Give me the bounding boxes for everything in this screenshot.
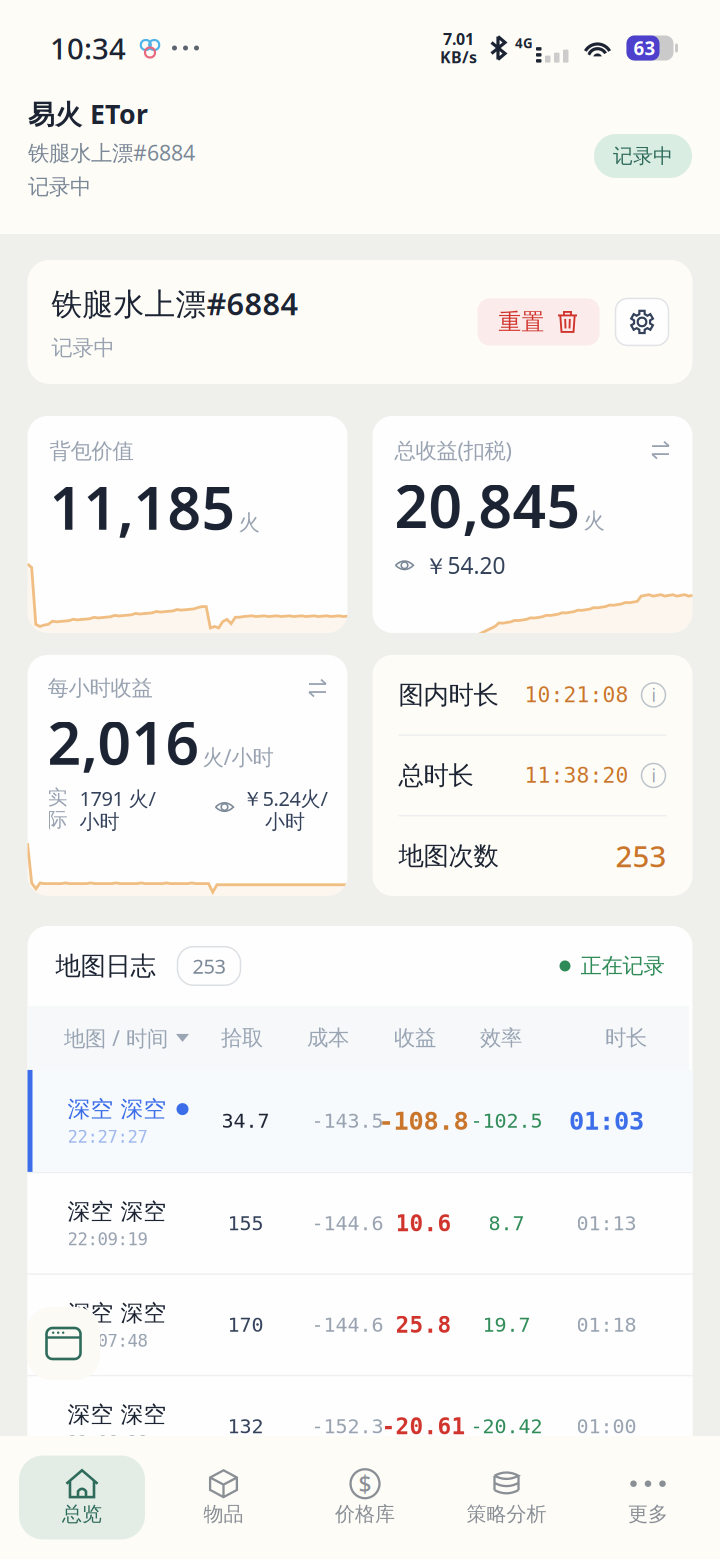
staticText: 10:21:08 xyxy=(524,683,628,707)
staticText: 01:13 xyxy=(576,1212,636,1235)
staticText: 物品 xyxy=(203,1502,243,1526)
staticText: 4G xyxy=(515,34,533,52)
staticText: -102.5 xyxy=(470,1110,542,1132)
staticText: 19.7 xyxy=(482,1314,530,1336)
staticText: 拾取 xyxy=(221,1025,263,1051)
staticText: -144.6 xyxy=(311,1212,383,1235)
staticText: 253 xyxy=(192,953,225,979)
button[interactable]: 重置 xyxy=(477,298,599,345)
button[interactable]: 深空 深空 xyxy=(27,1275,692,1375)
staticText: 效率 xyxy=(480,1025,522,1051)
staticText: 170 xyxy=(227,1314,263,1336)
staticText: ￥5.24火/ xyxy=(242,785,327,812)
staticText: 20,845 xyxy=(394,466,580,544)
staticText: 更多 xyxy=(628,1502,668,1526)
staticText: i xyxy=(651,683,655,706)
staticText: 成本 xyxy=(307,1025,349,1051)
staticText: 34.7 xyxy=(221,1110,269,1132)
staticText: 2,016 xyxy=(47,703,199,781)
staticText: 收益 xyxy=(394,1025,436,1051)
staticText: -144.6 xyxy=(311,1314,383,1336)
button[interactable]: 策略分析 xyxy=(443,1455,569,1539)
staticText: 策略分析 xyxy=(466,1502,546,1526)
staticText: 背包价值 xyxy=(49,438,133,464)
staticText: 深空 深空 xyxy=(67,1198,166,1225)
staticText: $ xyxy=(358,1469,371,1499)
staticText: 63 xyxy=(633,36,655,60)
button[interactable]: 总览 xyxy=(19,1455,145,1539)
staticText: 253 xyxy=(615,836,666,875)
staticText: 地图次数 xyxy=(398,840,498,871)
staticText: 深空 深空 xyxy=(67,1401,166,1428)
staticText: 记录中 xyxy=(51,335,114,361)
staticText: 火 xyxy=(238,510,259,536)
staticText: 实 xyxy=(47,785,67,810)
staticText: 深空 深空 xyxy=(67,1299,166,1327)
button[interactable]: 设置 xyxy=(615,298,668,345)
staticText: 火 xyxy=(583,508,604,534)
staticText: 总时长 xyxy=(398,760,473,791)
staticText: 1791 火/ xyxy=(79,785,155,812)
staticText: 22:06:38 xyxy=(67,1432,147,1452)
staticText: 价格库 xyxy=(335,1502,395,1526)
staticText: 22:07:48 xyxy=(67,1331,147,1351)
staticText: 11,185 xyxy=(49,468,235,546)
staticText: -143.5 xyxy=(311,1110,383,1132)
staticText: 01:00 xyxy=(576,1415,636,1438)
staticText: 地图 / 时间 xyxy=(64,1024,168,1052)
staticText: 22:27:27 xyxy=(67,1127,147,1147)
staticText: 际 xyxy=(47,808,67,832)
staticText: i xyxy=(651,764,655,787)
button[interactable]: 记录中 xyxy=(594,134,692,178)
button[interactable]: 深空 深空 xyxy=(27,1070,692,1172)
button[interactable]: 深空 深空 xyxy=(27,1173,692,1273)
staticText: 每小时收益 xyxy=(47,675,152,701)
staticText: 地图日志 xyxy=(55,950,155,981)
staticText: 8.7 xyxy=(488,1212,524,1235)
staticText: ￥54.20 xyxy=(424,550,505,580)
staticText: 记录中 xyxy=(613,144,673,168)
staticText: 总览 xyxy=(62,1502,102,1526)
staticText: 铁腿水上漂#6884 xyxy=(28,138,195,167)
button[interactable]: $ xyxy=(302,1455,428,1539)
staticText: 132 xyxy=(227,1415,263,1438)
staticText: 铁腿水上漂#6884 xyxy=(51,283,298,324)
staticText: 11:38:20 xyxy=(524,763,628,787)
staticText: 155 xyxy=(227,1212,263,1235)
button[interactable]: 更多 xyxy=(585,1455,711,1539)
staticText: -20.61 xyxy=(381,1414,465,1439)
button[interactable]: 物品 xyxy=(160,1455,286,1539)
staticText: 01:03 xyxy=(569,1107,644,1135)
staticText: 时长 xyxy=(605,1025,647,1051)
staticText: 10.6 xyxy=(395,1211,451,1236)
button[interactable]: 浏览器 xyxy=(27,1307,100,1380)
staticText: 小时 xyxy=(79,810,119,834)
staticText: -20.42 xyxy=(470,1415,542,1438)
staticText: 易火 ETor xyxy=(28,96,148,131)
staticText: 7.01 xyxy=(443,28,474,49)
staticText: -152.3 xyxy=(311,1415,383,1438)
staticText: 重置 xyxy=(498,308,544,336)
staticText: 深空 深空 xyxy=(67,1095,166,1123)
button[interactable]: 深空 深空 xyxy=(27,1376,692,1476)
staticText: 25.8 xyxy=(395,1312,451,1338)
staticText: 图内时长 xyxy=(398,679,498,710)
staticText: KB/s xyxy=(440,46,477,68)
staticText: 10:34 xyxy=(50,28,126,67)
staticText: 火/小时 xyxy=(202,743,273,771)
staticText: -108.8 xyxy=(378,1107,468,1135)
staticText: 小时 xyxy=(265,810,305,834)
staticText: 总收益(扣税) xyxy=(394,436,511,464)
staticText: 正在记录 xyxy=(580,953,664,979)
staticText: 01:18 xyxy=(576,1314,636,1336)
staticText: 22:09:19 xyxy=(67,1229,147,1249)
staticText: 记录中 xyxy=(28,174,91,200)
